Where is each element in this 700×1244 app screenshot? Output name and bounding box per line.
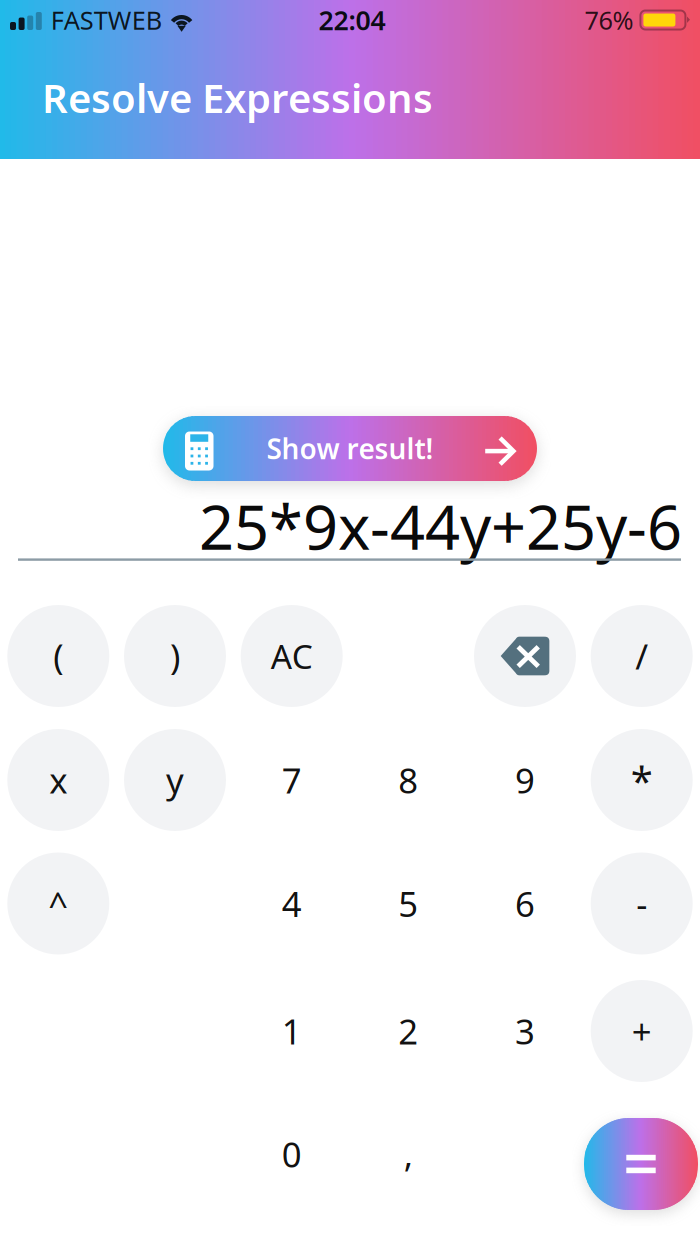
button[interactable]: Show result! xyxy=(163,416,537,481)
staticText: FASTWEB xyxy=(51,3,162,37)
button[interactable]: , xyxy=(350,1095,466,1213)
button[interactable]: 3 xyxy=(467,972,583,1090)
button[interactable]: ^ xyxy=(0,844,116,962)
button[interactable]: 6 xyxy=(467,844,583,962)
button[interactable]: y xyxy=(117,721,233,839)
staticText: 76% xyxy=(584,3,633,37)
staticText: 25*9x-44y+25y-6 xyxy=(199,485,682,567)
staticText: 9 xyxy=(515,757,535,803)
staticText: 6 xyxy=(515,880,535,926)
staticText: 5 xyxy=(398,880,418,926)
staticText: 1 xyxy=(282,1008,302,1054)
staticText: + xyxy=(632,1008,652,1054)
staticText: , xyxy=(404,1131,413,1177)
button[interactable]: 1 xyxy=(234,972,350,1090)
staticText: AC xyxy=(271,634,313,678)
button[interactable]: 4 xyxy=(234,844,350,962)
staticText: 4 xyxy=(282,880,302,926)
button[interactable]: 0 xyxy=(234,1095,350,1213)
button[interactable]: ( xyxy=(0,597,116,715)
staticText: * xyxy=(631,753,653,806)
staticText: ) xyxy=(170,633,180,679)
staticText: 0 xyxy=(282,1131,302,1177)
staticText: ^ xyxy=(48,880,68,926)
staticText: - xyxy=(636,880,647,926)
staticText: 7 xyxy=(282,757,302,803)
staticText: ( xyxy=(53,633,63,679)
staticText: x xyxy=(49,757,67,803)
button[interactable]: - xyxy=(584,844,700,962)
staticText: y xyxy=(166,757,184,803)
button[interactable]: 2 xyxy=(350,972,466,1090)
staticText: 8 xyxy=(398,757,418,803)
staticText: 22:04 xyxy=(318,2,385,38)
button[interactable]: * xyxy=(584,721,700,839)
staticText: Resolve Expressions xyxy=(42,71,433,124)
button[interactable]: / xyxy=(584,597,700,715)
staticText: Show result! xyxy=(266,430,433,467)
button[interactable]: 8 xyxy=(350,721,466,839)
button[interactable]: x xyxy=(0,721,116,839)
button[interactable]: 9 xyxy=(467,721,583,839)
button[interactable]: ) xyxy=(117,597,233,715)
button[interactable]: 5 xyxy=(350,844,466,962)
button[interactable]: + xyxy=(584,972,700,1090)
button[interactable]: AC xyxy=(234,597,350,715)
staticText: 3 xyxy=(515,1008,535,1054)
button[interactable]: Delete xyxy=(467,597,583,715)
button[interactable]: Equals xyxy=(584,1118,698,1210)
staticText: / xyxy=(635,633,648,679)
button[interactable]: 7 xyxy=(234,721,350,839)
staticText: 2 xyxy=(398,1008,418,1054)
